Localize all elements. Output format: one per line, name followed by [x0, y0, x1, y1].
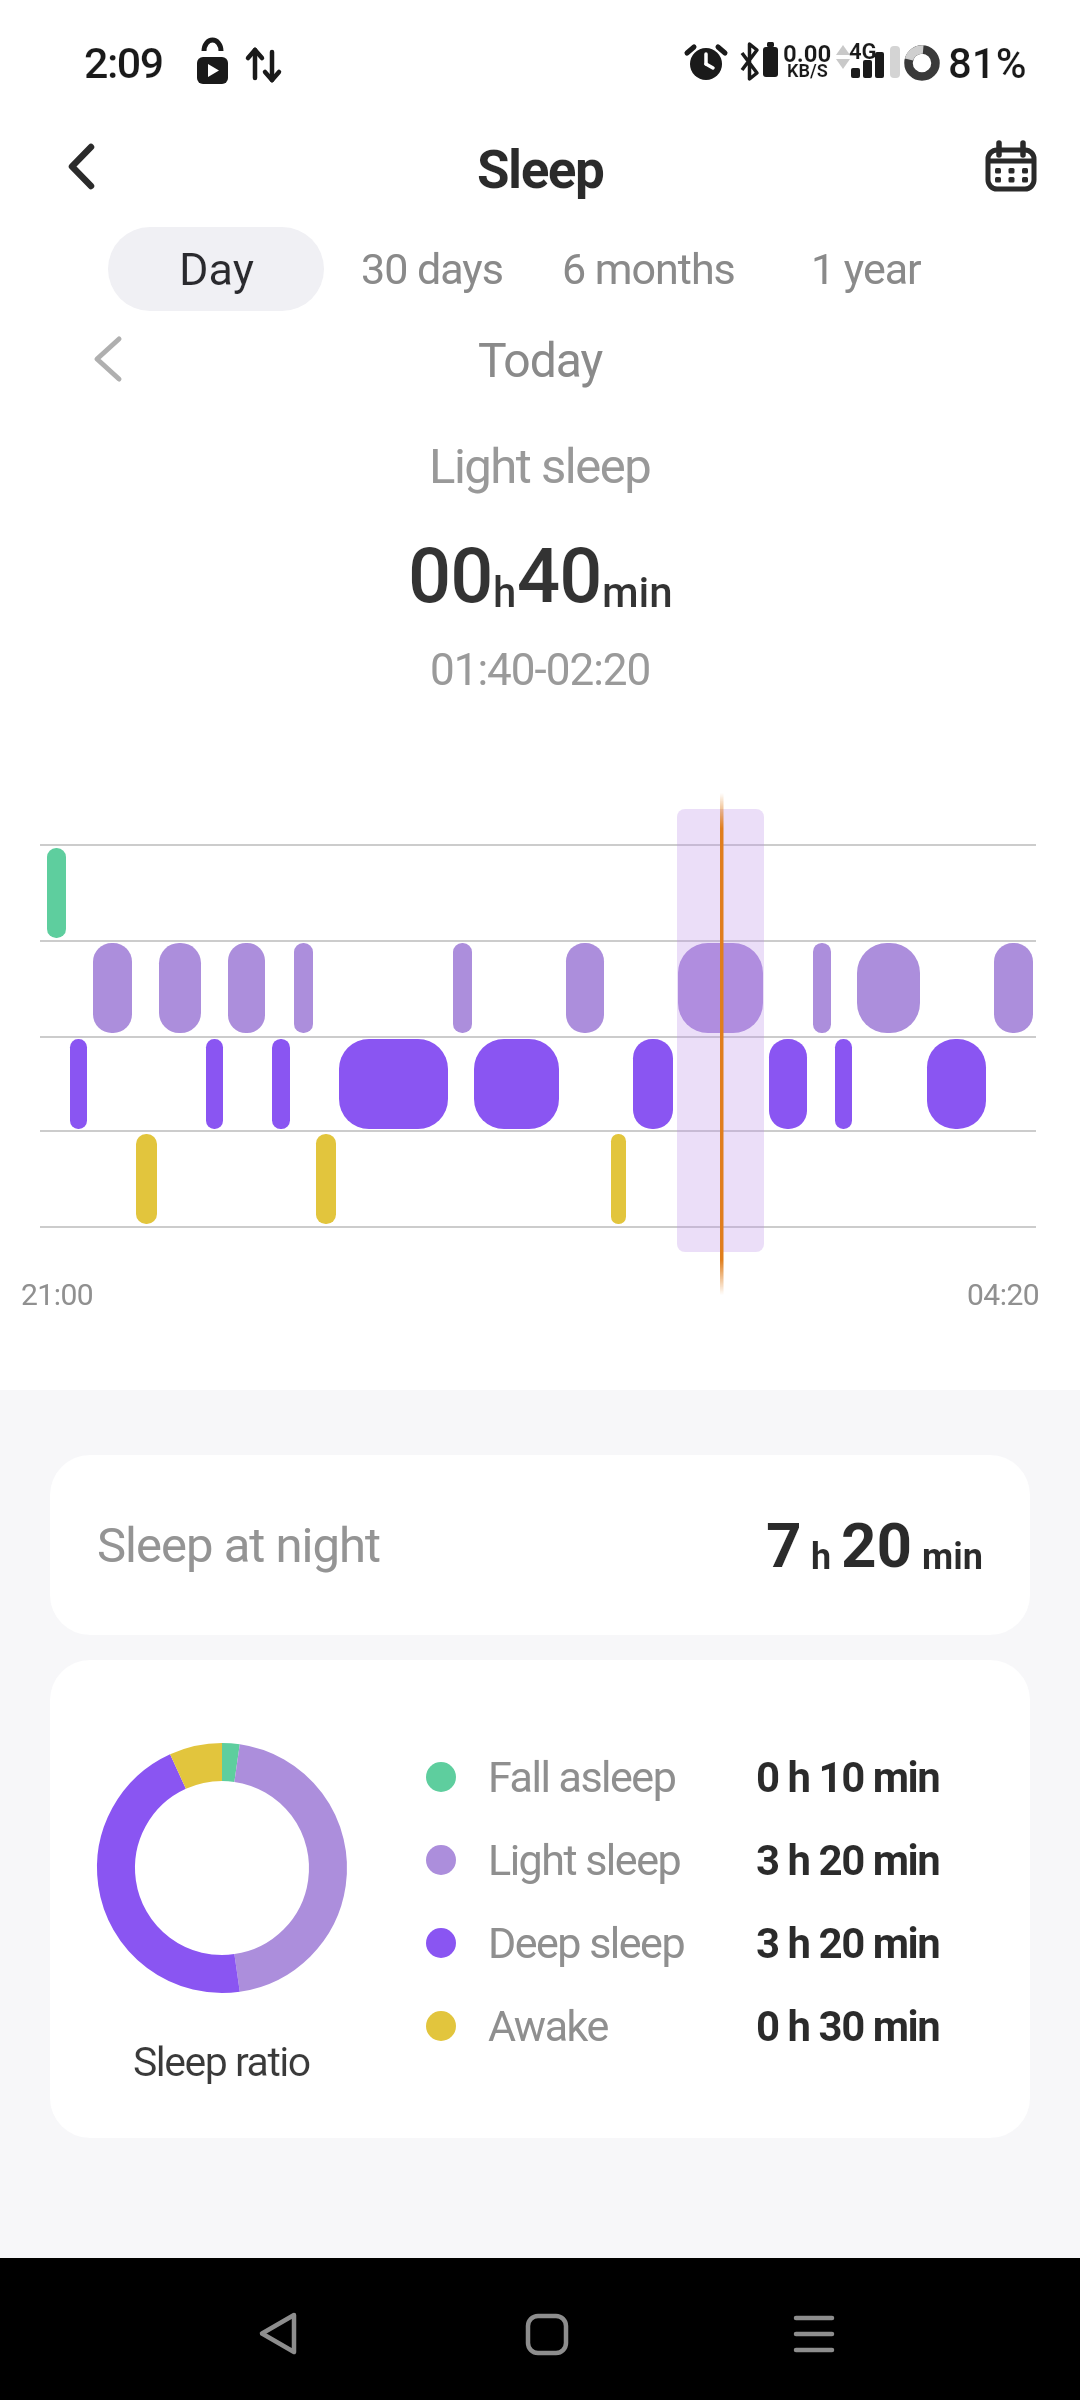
staticText: Today: [478, 332, 603, 388]
staticText: Sleep ratio: [133, 2038, 310, 2086]
staticText: Sleep at night: [97, 1517, 380, 1574]
staticText: 3 h 20 min: [756, 1836, 940, 1885]
staticText: 6 months: [562, 244, 735, 294]
button[interactable]: Sleep at night: [50, 1455, 1030, 1635]
staticText: h: [802, 1536, 841, 1578]
button[interactable]: [232, 2303, 322, 2393]
button[interactable]: Day: [108, 227, 324, 311]
staticText: Deep sleep: [488, 1918, 685, 1968]
button[interactable]: [768, 2303, 858, 2393]
button[interactable]: [50, 1660, 1030, 2138]
staticText: Light sleep: [429, 438, 651, 495]
staticText: min: [913, 1536, 983, 1578]
staticText: 0 h 30 min: [756, 2002, 940, 2051]
button[interactable]: 6 months: [543, 231, 753, 307]
staticText: Light sleep: [488, 1835, 681, 1885]
button[interactable]: Today: [420, 325, 660, 395]
staticText: 21:00: [21, 1277, 94, 1312]
button[interactable]: 1 year: [761, 231, 971, 307]
staticText: Sleep: [477, 139, 604, 201]
button[interactable]: 30 days: [327, 231, 537, 307]
staticText: 81%: [948, 39, 1027, 88]
staticText: 20: [841, 1509, 913, 1582]
staticText: Day: [179, 243, 254, 296]
staticText: 0.00: [783, 40, 832, 68]
staticText: 2:09: [84, 38, 163, 88]
staticText: 00: [408, 531, 493, 620]
staticText: 04:20: [967, 1277, 1040, 1312]
button[interactable]: [52, 136, 116, 200]
button[interactable]: [501, 2303, 591, 2393]
staticText: h: [493, 568, 517, 617]
staticText: 1 year: [811, 244, 921, 294]
staticText: 3 h 20 min: [756, 1919, 940, 1968]
staticText: 30 days: [361, 244, 503, 294]
staticText: 40: [517, 531, 602, 620]
staticText: KB/S: [787, 60, 828, 81]
staticText: 0 h 10 min: [756, 1753, 940, 1802]
staticText: 4G: [849, 39, 877, 65]
staticText: Awake: [488, 2001, 608, 2051]
button[interactable]: [978, 134, 1044, 200]
staticText: min: [602, 568, 673, 617]
staticText: Fall asleep: [488, 1752, 676, 1802]
staticText: 7: [766, 1509, 802, 1582]
staticText: 01:40-02:20: [430, 644, 651, 696]
